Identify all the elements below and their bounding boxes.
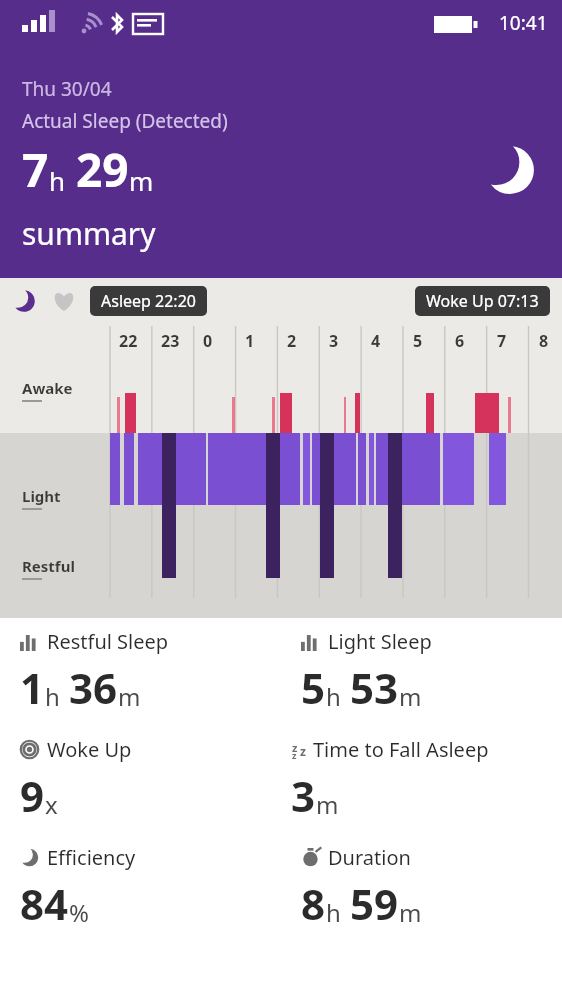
- staticText: 1: [20, 659, 45, 716]
- other: Efficiency: [20, 848, 39, 867]
- staticText: Time to Fall Asleep: [313, 736, 489, 763]
- button[interactable]: Efficiency: [0, 834, 281, 932]
- staticText: 7: [22, 138, 49, 201]
- staticText: Restful: [22, 556, 75, 576]
- staticText: z: [292, 749, 297, 761]
- staticText: %: [69, 896, 89, 929]
- staticText: h: [45, 680, 60, 713]
- other: Time to Fall Asleep: [291, 739, 313, 761]
- staticText: m: [399, 680, 422, 713]
- staticText: Light Sleep: [328, 628, 432, 655]
- staticText: z: [300, 743, 306, 759]
- staticText: 5: [301, 659, 326, 716]
- other: Restful Sleep: [20, 632, 39, 651]
- staticText: 22: [119, 330, 138, 352]
- staticText: Duration: [328, 844, 411, 871]
- staticText: 0: [203, 330, 213, 352]
- staticText: 9: [20, 767, 45, 824]
- staticText: 10:41: [499, 10, 548, 36]
- staticText: 6: [455, 330, 465, 352]
- other: Sleep: [484, 144, 536, 196]
- button[interactable]: Asleep 22:20: [101, 290, 196, 312]
- button[interactable]: Woke Up: [0, 726, 281, 824]
- staticText: h: [326, 680, 341, 713]
- button[interactable]: Duration: [281, 834, 562, 932]
- staticText: Restful Sleep: [47, 628, 169, 655]
- staticText: h: [326, 896, 341, 929]
- other: Woke Up: [20, 740, 39, 759]
- staticText: 36: [69, 659, 118, 716]
- staticText: 3: [329, 330, 339, 352]
- staticText: 3: [291, 767, 316, 824]
- staticText: 8: [301, 875, 326, 932]
- staticText: 59: [350, 875, 399, 932]
- staticText: m: [129, 163, 154, 198]
- staticText: 2: [287, 330, 297, 352]
- button[interactable]: Woke Up 07:13: [426, 290, 539, 312]
- staticText: 84: [20, 875, 69, 932]
- staticText: 29: [76, 138, 129, 201]
- staticText: Light: [22, 486, 61, 506]
- staticText: Asleep 22:20: [101, 290, 196, 312]
- staticText: h: [49, 163, 66, 198]
- staticText: x: [45, 788, 58, 821]
- staticText: m: [399, 896, 422, 929]
- staticText: Woke Up: [47, 736, 132, 763]
- staticText: Thu 30/04: [22, 76, 112, 102]
- other: Heart rate: [52, 289, 76, 313]
- other: Sleep mode: [12, 289, 36, 313]
- staticText: z: [292, 740, 298, 755]
- other: Duration: [301, 848, 320, 867]
- staticText: Actual Sleep (Detected): [22, 108, 228, 134]
- button[interactable]: Restful Sleep: [0, 618, 281, 716]
- staticText: 4: [371, 330, 381, 352]
- staticText: 5: [413, 330, 423, 352]
- staticText: 8: [539, 330, 549, 352]
- staticText: 1: [245, 330, 255, 352]
- staticText: Efficiency: [47, 844, 136, 871]
- staticText: m: [118, 680, 141, 713]
- staticText: Awake: [22, 378, 73, 398]
- staticText: 23: [161, 330, 180, 352]
- staticText: m: [316, 788, 339, 821]
- other: Light Sleep: [301, 632, 320, 651]
- staticText: Woke Up 07:13: [426, 290, 539, 312]
- button[interactable]: summary: [22, 213, 156, 254]
- staticText: 7: [497, 330, 507, 352]
- staticText: 53: [350, 659, 399, 716]
- button[interactable]: Light Sleep: [281, 618, 562, 716]
- button[interactable]: Time to Fall Asleep: [281, 726, 562, 824]
